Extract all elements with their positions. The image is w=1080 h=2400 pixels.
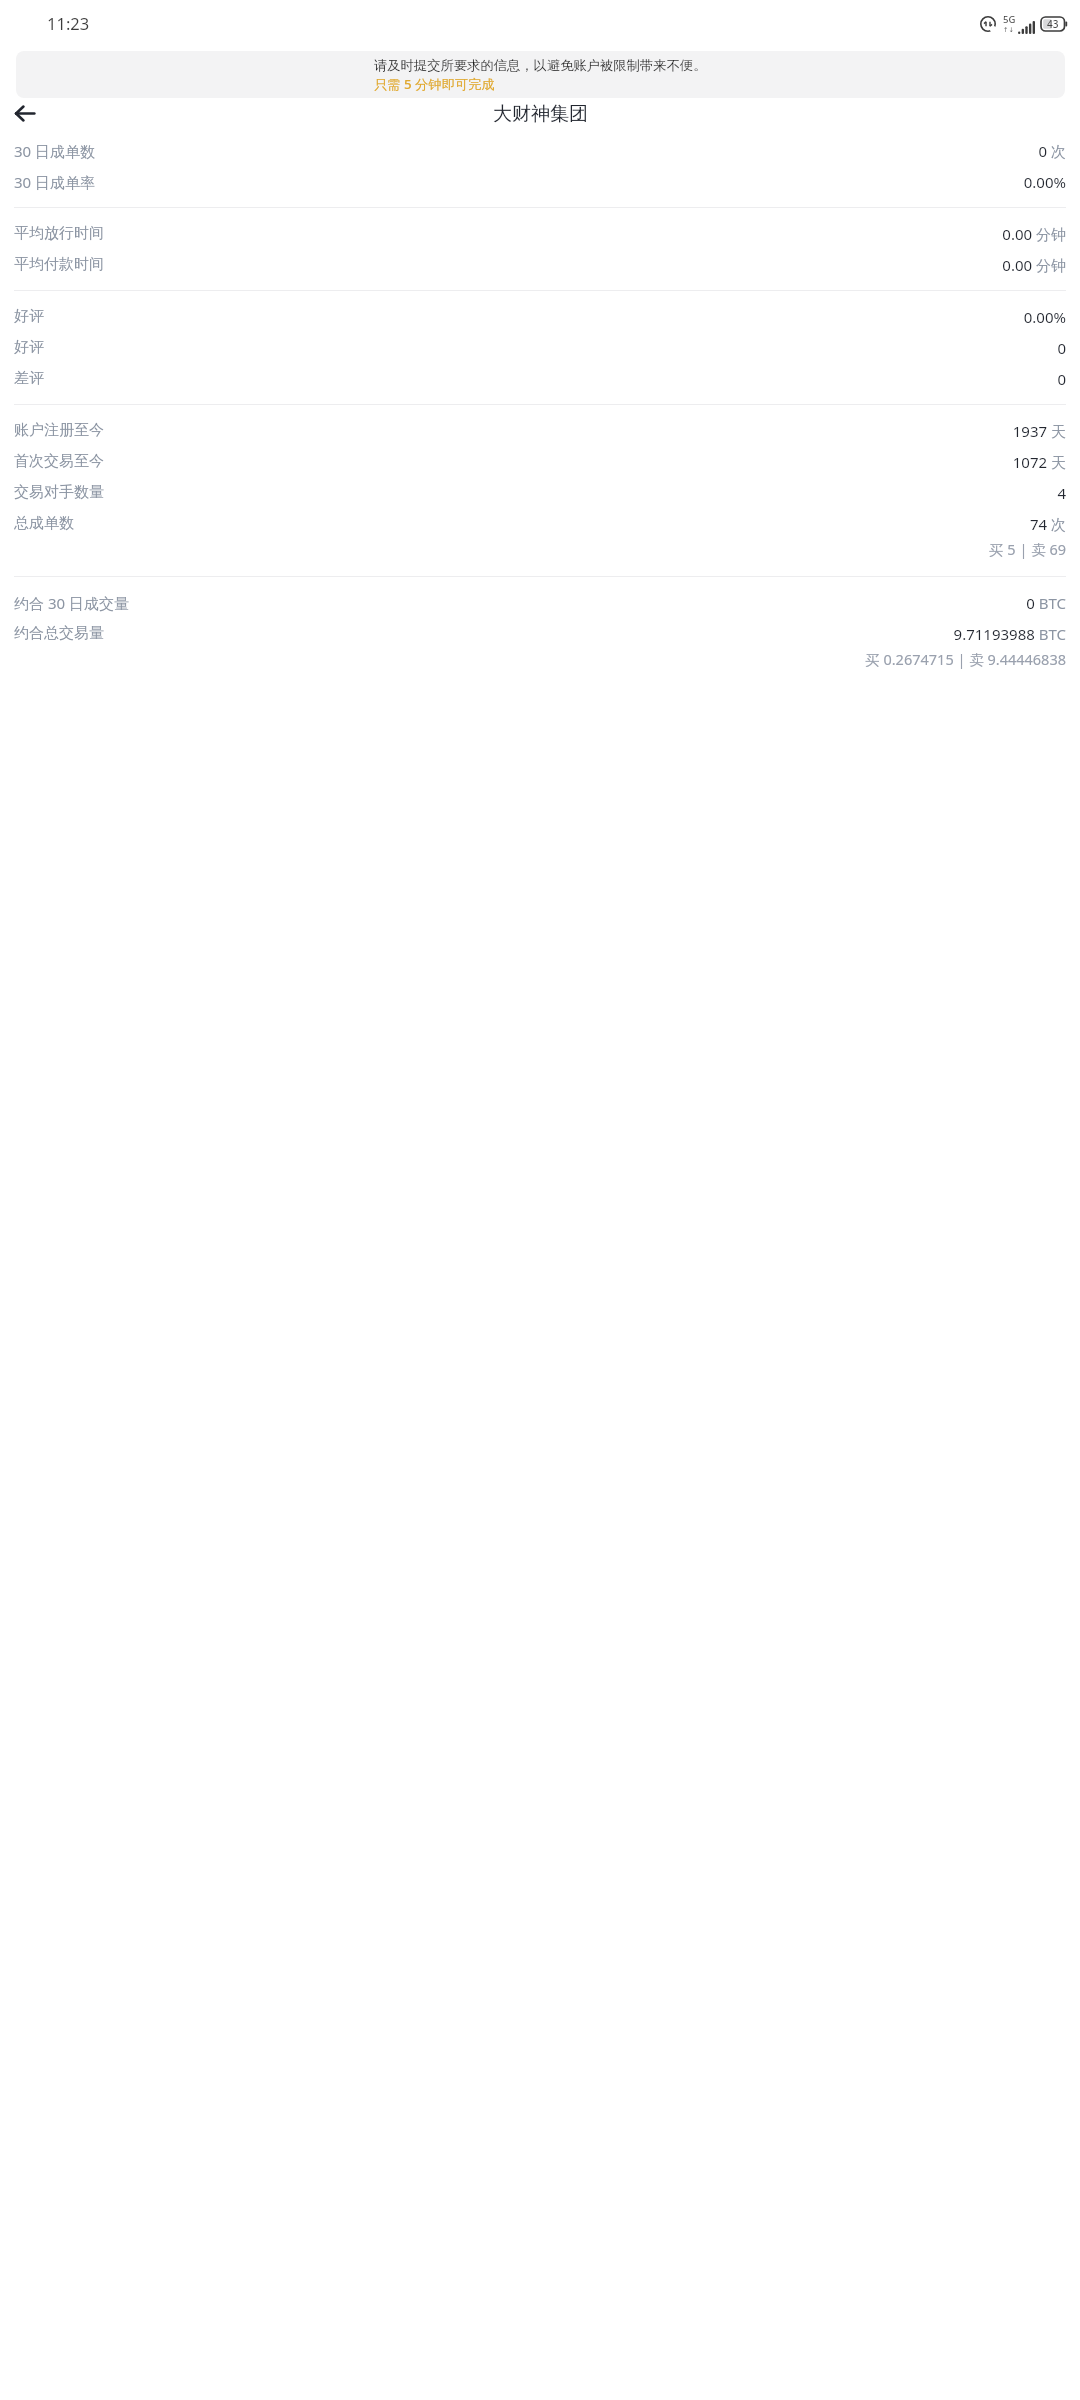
button[interactable]: 账户注册至今 <box>0 415 1080 446</box>
button[interactable]: 好评 <box>0 332 1080 363</box>
staticText: 0.00 分钟 <box>1002 255 1066 275</box>
button[interactable]: 请及时提交所要求的信息，以避免账户被限制带来不便。 <box>16 51 1065 98</box>
staticText: 约合 30 日成交量 <box>14 593 129 613</box>
button[interactable]: 差评 <box>0 363 1080 394</box>
staticText: 好评 <box>14 338 44 357</box>
staticText: 1072 天 <box>1012 452 1066 472</box>
staticText: 9.71193988 BTC <box>953 624 1066 644</box>
staticText: 0 次 <box>1038 141 1066 161</box>
staticText: 0 <box>1057 369 1066 389</box>
button[interactable]: 交易对手数量 <box>0 477 1080 508</box>
staticText: 0.00 分钟 <box>1002 224 1066 244</box>
staticText: 0 BTC <box>1026 593 1066 613</box>
staticText: 43 <box>1047 17 1059 31</box>
staticText: 首次交易至今 <box>14 452 104 471</box>
staticText: 平均放行时间 <box>14 224 104 243</box>
staticText: 请及时提交所要求的信息，以避免账户被限制带来不便。 <box>374 57 707 74</box>
staticText: 平均付款时间 <box>14 255 104 274</box>
staticText: 总成单数 <box>14 514 74 533</box>
staticText: 0 <box>1057 338 1066 358</box>
staticText: 5G <box>1003 13 1016 26</box>
button[interactable]: 平均付款时间 <box>0 249 1080 280</box>
button[interactable]: Back <box>0 98 48 129</box>
button[interactable]: 总成单数 <box>0 508 1080 566</box>
staticText: 差评 <box>14 369 44 388</box>
staticText: 1937 天 <box>1012 421 1066 441</box>
staticText: ↑↓ <box>1003 26 1014 34</box>
staticText: 0.00% <box>1023 307 1066 327</box>
staticText: 交易对手数量 <box>14 483 104 502</box>
staticText: 约合总交易量 <box>14 624 104 643</box>
staticText: 买 5 | 卖 69 <box>989 539 1066 559</box>
staticText: 30 日成单率 <box>14 172 96 192</box>
staticText: 买 0.2674715 | 卖 9.44446838 <box>865 649 1066 669</box>
button[interactable]: 约合 30 日成交量 <box>0 587 1080 618</box>
staticText: 只需 5 分钟即可完成 <box>374 75 495 93</box>
button[interactable]: 首次交易至今 <box>0 446 1080 477</box>
button[interactable]: 30 日成单数 <box>0 135 1080 166</box>
staticText: 30 日成单数 <box>14 141 96 161</box>
staticText: 账户注册至今 <box>14 421 104 440</box>
staticText: 11:23 <box>47 12 90 34</box>
button[interactable]: 平均放行时间 <box>0 218 1080 249</box>
button[interactable]: 30 日成单率 <box>0 166 1080 197</box>
staticText: 好评 <box>14 307 44 326</box>
staticText: 4 <box>1057 483 1066 503</box>
button[interactable]: 约合总交易量 <box>0 618 1080 676</box>
staticText: 大财神集团 <box>493 102 588 126</box>
staticText: 74 次 <box>1029 514 1066 534</box>
staticText: 0.00% <box>1023 172 1066 192</box>
button[interactable]: 好评 <box>0 301 1080 332</box>
